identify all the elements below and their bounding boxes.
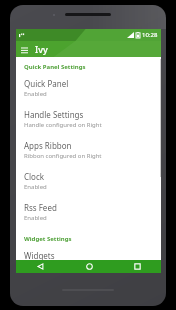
staticText: Quick Panel Settings [24,63,155,71]
button[interactable]: Quick Panel [24,78,155,98]
staticText: Enabled [24,183,47,191]
staticText: Widgets [24,250,55,260]
button[interactable]: Clock [24,171,155,191]
button[interactable]: Handle Settings [24,109,155,129]
staticText: Clock [24,171,45,182]
button[interactable]: Home [65,260,113,273]
staticText: Apps Ribbon [24,140,72,151]
button[interactable]: Rss Feed [24,202,155,222]
staticText: Enabled [24,214,47,222]
button[interactable]: Open navigation drawer [18,43,31,56]
button[interactable]: Recent apps [113,260,161,273]
staticText: Ribbon configured on Right [24,152,102,160]
staticText: Handle Settings [24,109,84,120]
button[interactable]: Apps Ribbon [24,140,155,160]
staticText: Handle configured on Right [24,121,102,129]
button[interactable]: Widgets [24,250,155,260]
button[interactable]: Back [16,260,65,273]
staticText: Rss Feed [24,202,57,213]
staticText: 10:28 [142,31,158,39]
staticText: Ivy [35,43,48,55]
staticText: Widget Settings [24,235,155,243]
staticText: Enabled [24,90,47,98]
staticText: Quick Panel [24,78,69,89]
